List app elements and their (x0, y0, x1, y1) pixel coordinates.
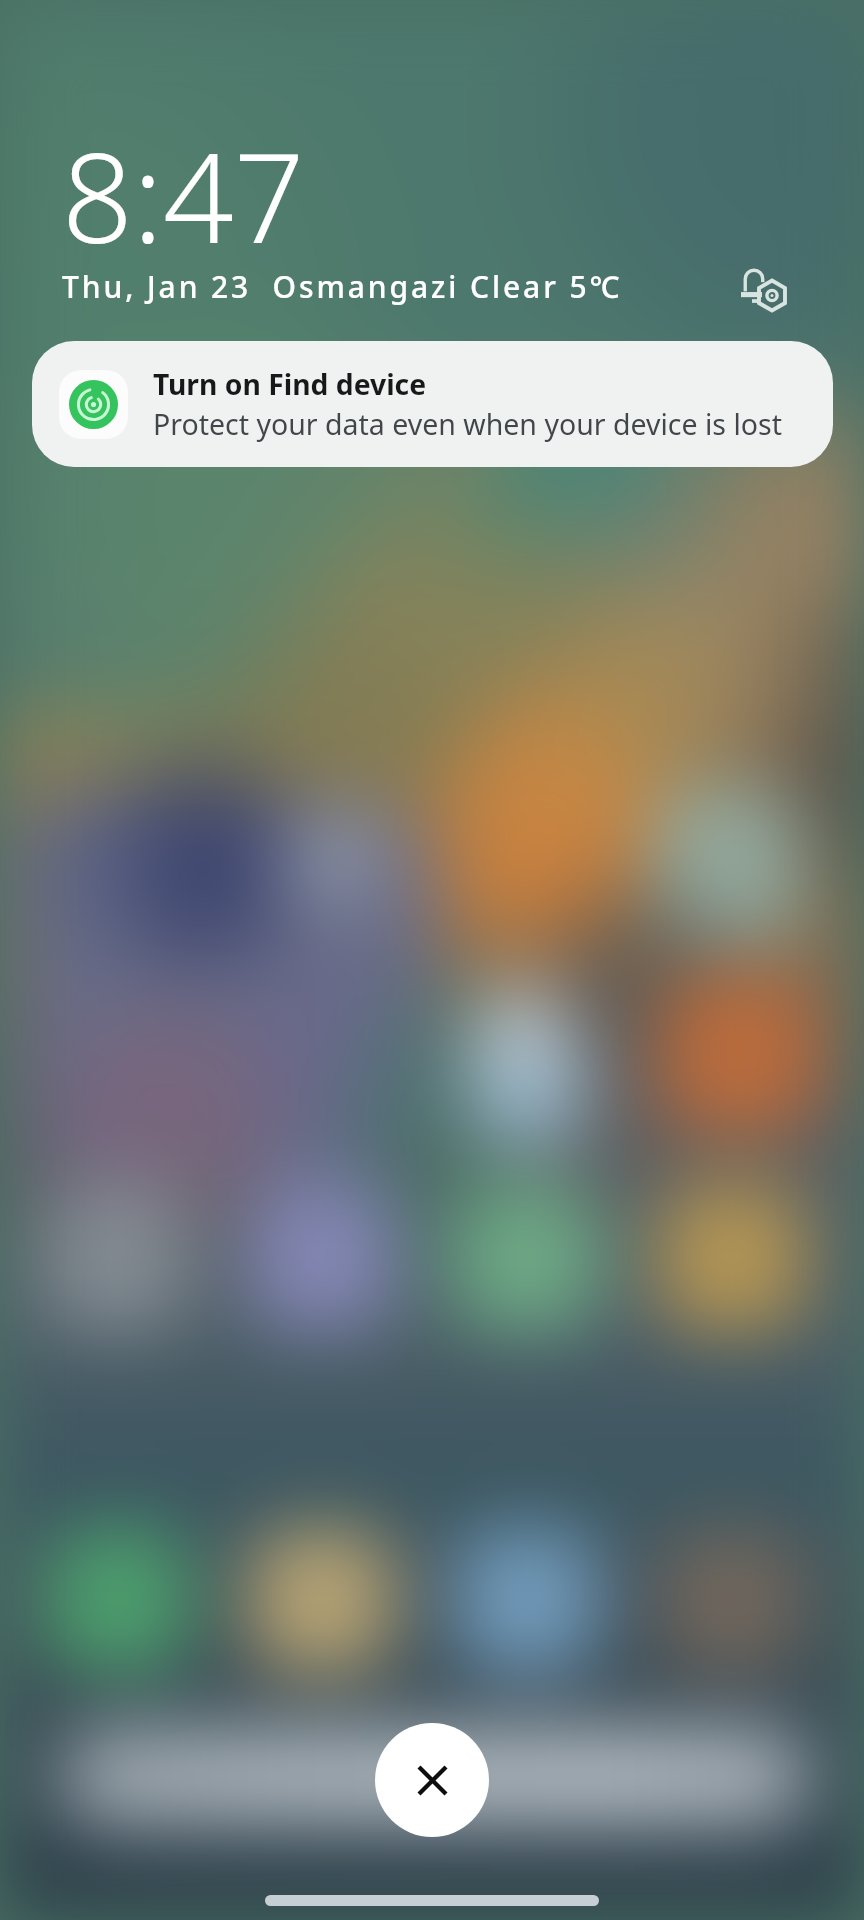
button[interactable]: Turn on Find device (32, 341, 833, 467)
staticText: 8:47 (62, 110, 305, 279)
button[interactable]: Close (375, 1723, 489, 1837)
staticText: Protect your data even when your device … (153, 405, 782, 444)
staticText: Turn on Find device (153, 365, 427, 404)
button[interactable]: Device lock settings (728, 254, 800, 326)
staticText: Thu, Jan 23 Osmangazi Clear 5℃ (62, 266, 623, 307)
